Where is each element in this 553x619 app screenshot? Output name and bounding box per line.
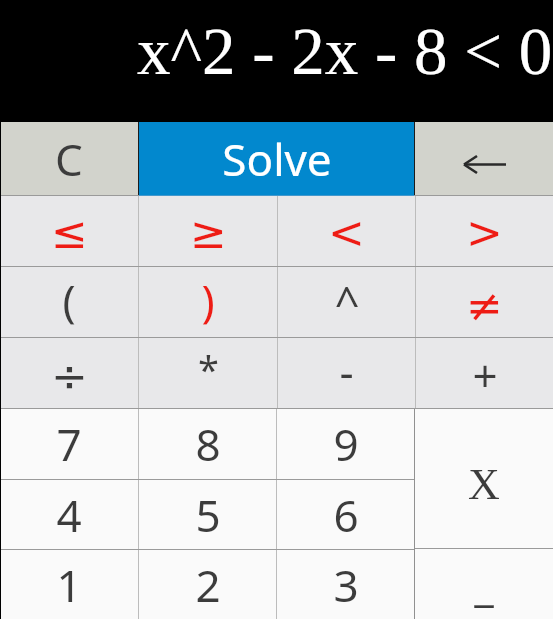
button[interactable]: 3: [277, 550, 414, 619]
button[interactable]: 8: [139, 409, 276, 479]
staticText: 8: [195, 414, 221, 474]
button[interactable]: 1: [0, 550, 138, 619]
button[interactable]: 5: [139, 480, 276, 549]
button[interactable]: 6: [277, 480, 414, 549]
staticText: 2: [195, 555, 221, 615]
button[interactable]: ): [139, 267, 277, 337]
staticText: +: [472, 345, 498, 405]
button[interactable]: Solve: [139, 122, 414, 195]
staticText: x^2 - 2x - 8 < 0: [137, 14, 553, 88]
staticText: 3: [333, 555, 359, 615]
button[interactable]: _: [415, 549, 553, 619]
staticText: 7: [56, 414, 82, 474]
staticText: C: [55, 129, 83, 189]
button[interactable]: ≤: [0, 196, 138, 266]
button[interactable]: >: [416, 196, 553, 266]
button[interactable]: C: [0, 122, 138, 195]
staticText: 4: [56, 485, 82, 545]
button[interactable]: 9: [277, 409, 414, 479]
staticText: X: [468, 460, 500, 509]
staticText: 5: [195, 485, 221, 545]
staticText: -: [339, 341, 354, 401]
button[interactable]: X: [415, 409, 553, 548]
staticText: ): [201, 270, 215, 330]
staticText: ÷: [51, 350, 88, 401]
staticText: <: [328, 207, 365, 258]
staticText: (: [62, 270, 76, 330]
button[interactable]: *: [139, 338, 277, 408]
button[interactable]: ÷: [0, 338, 138, 408]
button[interactable]: 2: [139, 550, 276, 619]
staticText: ≥: [190, 207, 227, 258]
button[interactable]: Backspace: [415, 122, 553, 195]
button[interactable]: 7: [0, 409, 138, 479]
staticText: ≤: [51, 207, 88, 258]
button[interactable]: -: [278, 338, 415, 408]
staticText: _: [474, 554, 494, 614]
button[interactable]: 4: [0, 480, 138, 549]
staticText: >: [466, 207, 503, 258]
button[interactable]: (: [0, 267, 138, 337]
staticText: ^: [334, 272, 360, 332]
button[interactable]: ≠: [416, 267, 553, 337]
button[interactable]: <: [278, 196, 415, 266]
button[interactable]: +: [416, 338, 553, 408]
staticText: 9: [333, 414, 359, 474]
staticText: ≠: [466, 280, 503, 331]
staticText: 1: [56, 555, 82, 615]
staticText: *: [198, 343, 219, 395]
button[interactable]: ≥: [139, 196, 277, 266]
staticText: Solve: [222, 129, 332, 189]
staticText: 6: [333, 485, 359, 545]
button[interactable]: ^: [278, 267, 415, 337]
